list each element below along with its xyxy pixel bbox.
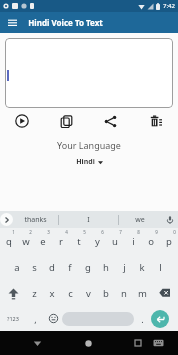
button[interactable]: q xyxy=(0,228,17,254)
staticText: n xyxy=(121,287,127,300)
button[interactable] xyxy=(149,331,167,355)
staticText: r xyxy=(59,235,63,248)
button[interactable] xyxy=(0,213,13,226)
button[interactable]: f xyxy=(61,254,79,280)
staticText: s xyxy=(32,261,37,274)
staticText: f xyxy=(68,261,72,274)
button[interactable]: i xyxy=(124,228,142,254)
staticText: . xyxy=(141,313,144,325)
button[interactable]: thanks xyxy=(13,211,58,228)
button[interactable]: , xyxy=(26,306,45,331)
staticText: 9 xyxy=(155,229,158,235)
button[interactable]: r xyxy=(52,228,70,254)
staticText: h xyxy=(103,261,109,274)
button[interactable]: x xyxy=(43,280,61,306)
staticText: d xyxy=(49,261,55,274)
button[interactable]: Hindi xyxy=(76,157,103,167)
button[interactable] xyxy=(150,115,162,127)
staticText: c xyxy=(68,287,73,300)
button[interactable] xyxy=(0,12,24,33)
staticText: 1 xyxy=(12,229,15,235)
staticText: j xyxy=(123,261,126,274)
staticText: b xyxy=(103,287,109,300)
button[interactable]: g xyxy=(79,254,97,280)
staticText: y xyxy=(95,235,100,248)
button[interactable]: . xyxy=(134,306,150,331)
staticText: e xyxy=(40,235,46,248)
button[interactable] xyxy=(45,306,62,331)
button[interactable] xyxy=(104,115,117,128)
button[interactable]: p xyxy=(160,228,178,254)
staticText: k xyxy=(139,261,145,274)
button[interactable] xyxy=(75,331,101,355)
staticText: 6 xyxy=(101,229,104,235)
button[interactable]: n xyxy=(115,280,133,306)
staticText: 7:42 xyxy=(163,2,175,10)
button[interactable] xyxy=(150,306,178,331)
staticText: u xyxy=(112,235,118,248)
button[interactable] xyxy=(60,115,73,128)
staticText: a xyxy=(14,261,20,274)
staticText: Your Language xyxy=(57,139,121,151)
staticText: m xyxy=(138,287,147,300)
button[interactable]: k xyxy=(133,254,151,280)
staticText: 5 xyxy=(83,229,86,235)
button[interactable]: j xyxy=(115,254,133,280)
button[interactable] xyxy=(62,312,134,326)
button[interactable]: h xyxy=(97,254,115,280)
button[interactable]: I xyxy=(59,211,118,228)
button[interactable]: v xyxy=(79,280,97,306)
staticText: 7 xyxy=(119,229,122,235)
button[interactable] xyxy=(0,280,26,306)
staticText: w xyxy=(22,235,30,248)
staticText: q xyxy=(6,235,12,248)
staticText: thanks xyxy=(24,215,47,225)
staticText: ?123 xyxy=(7,315,19,322)
button[interactable]: m xyxy=(133,280,151,306)
button[interactable]: ?123 xyxy=(0,306,26,331)
staticText: o xyxy=(148,235,154,248)
button[interactable]: o xyxy=(142,228,160,254)
staticText: 2 xyxy=(29,229,32,235)
staticText: 8 xyxy=(137,229,140,235)
staticText: 0 xyxy=(173,229,176,235)
staticText: i xyxy=(132,235,135,248)
staticText: g xyxy=(85,261,91,274)
button[interactable]: d xyxy=(43,254,61,280)
button[interactable]: y xyxy=(88,228,106,254)
staticText: Hindi Voice To Text xyxy=(28,17,103,28)
button[interactable]: t xyxy=(70,228,88,254)
button[interactable] xyxy=(125,331,151,355)
button[interactable] xyxy=(15,114,29,128)
button[interactable]: we xyxy=(119,211,161,228)
staticText: x xyxy=(49,287,55,300)
button[interactable] xyxy=(151,280,178,306)
staticText: t xyxy=(77,235,81,248)
staticText: I xyxy=(87,215,90,225)
button[interactable]: b xyxy=(97,280,115,306)
button[interactable]: c xyxy=(61,280,79,306)
staticText: , xyxy=(34,313,37,325)
staticText: p xyxy=(166,235,172,248)
staticText: l xyxy=(159,261,162,274)
staticText: Hindi xyxy=(76,157,95,167)
button[interactable]: a xyxy=(8,254,25,280)
button[interactable]: l xyxy=(151,254,169,280)
button[interactable]: s xyxy=(25,254,43,280)
staticText: 4 xyxy=(65,229,68,235)
button[interactable]: u xyxy=(106,228,124,254)
button[interactable]: w xyxy=(17,228,34,254)
button[interactable] xyxy=(24,331,50,355)
staticText: v xyxy=(86,287,91,300)
button[interactable] xyxy=(5,38,173,108)
button[interactable]: e xyxy=(34,228,52,254)
button[interactable]: z xyxy=(26,280,43,306)
staticText: 3 xyxy=(47,229,50,235)
staticText: z xyxy=(32,287,37,300)
staticText: we xyxy=(135,215,145,225)
button[interactable] xyxy=(161,211,178,228)
